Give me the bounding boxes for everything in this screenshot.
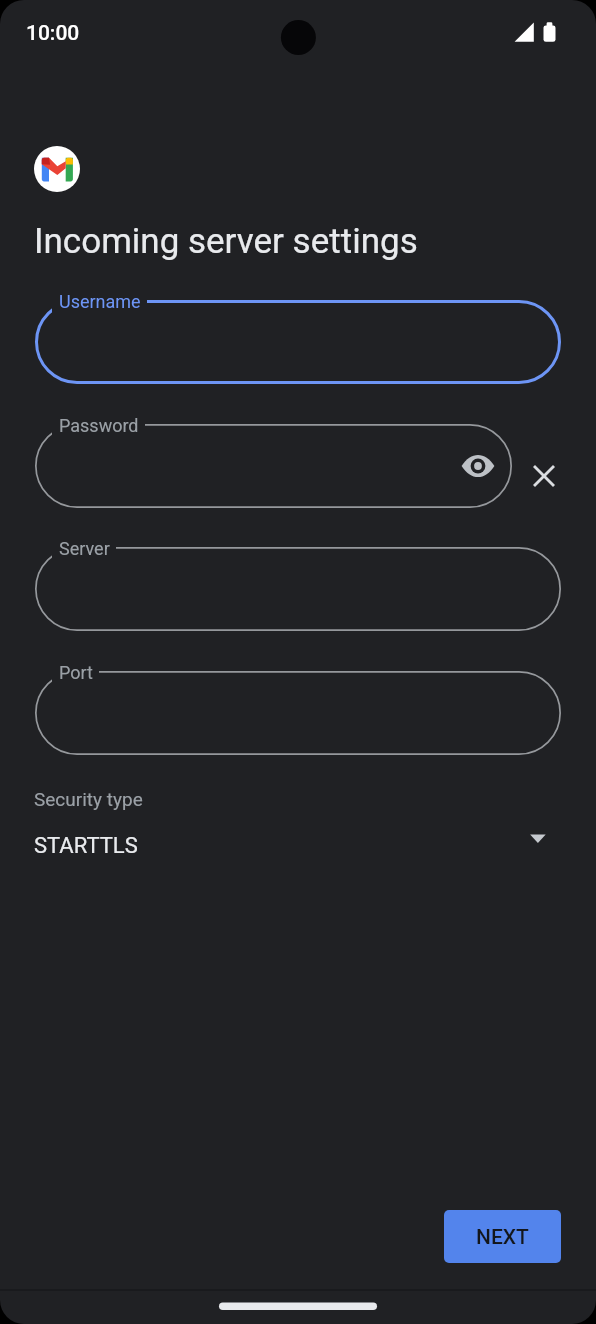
button[interactable]: Show password bbox=[456, 444, 500, 488]
staticText: Server bbox=[59, 538, 110, 559]
staticText: NEXT bbox=[476, 1225, 529, 1250]
button[interactable]: Username bbox=[35, 300, 561, 384]
staticText: Port bbox=[59, 662, 93, 683]
button[interactable]: Server bbox=[35, 547, 561, 631]
button[interactable]: Port bbox=[35, 671, 561, 755]
button[interactable]: NEXT bbox=[444, 1210, 561, 1263]
staticText: Security type bbox=[34, 788, 143, 810]
button[interactable]: STARTTLS bbox=[24, 820, 562, 872]
staticText: Username bbox=[59, 291, 141, 312]
staticText: 10:00 bbox=[26, 21, 80, 46]
staticText: STARTTLS bbox=[34, 833, 138, 859]
staticText: Password bbox=[59, 415, 139, 436]
button[interactable]: Password bbox=[35, 424, 512, 508]
button[interactable]: Clear password bbox=[522, 454, 566, 498]
staticText: Incoming server settings bbox=[34, 221, 418, 262]
other: Gmail bbox=[34, 146, 80, 192]
